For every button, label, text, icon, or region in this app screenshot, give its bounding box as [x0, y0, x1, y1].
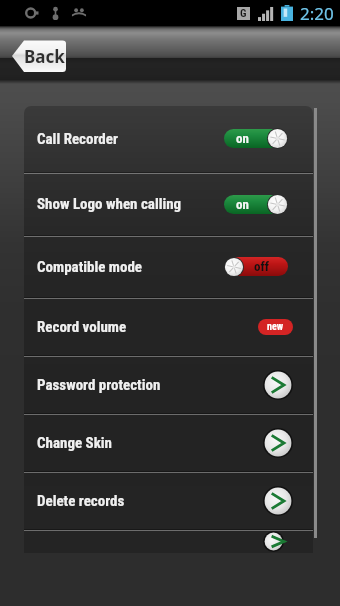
button[interactable]: Back [12, 40, 66, 72]
button[interactable]: Compatible mode [24, 237, 313, 297]
staticText: 2:20 [300, 2, 334, 25]
button[interactable]: Open [24, 531, 313, 553]
button[interactable]: Show Logo when calling [24, 174, 313, 235]
staticText: Back [24, 45, 65, 68]
staticText: G [240, 7, 247, 20]
button[interactable]: Call Recorder [24, 106, 313, 172]
button[interactable]: Switch on [224, 128, 288, 149]
button[interactable]: Switch off [224, 256, 288, 277]
staticText: Call Recorder [37, 130, 229, 148]
staticText: Change Skin [37, 434, 263, 452]
button[interactable]: Delete records [24, 473, 313, 529]
staticText: on [236, 197, 249, 212]
button[interactable]: Open [263, 370, 293, 400]
staticText: new [267, 321, 284, 333]
button[interactable]: Open [263, 486, 293, 516]
staticText: on [236, 131, 249, 146]
staticText: Record volume [37, 318, 258, 336]
staticText: Delete records [37, 492, 263, 510]
staticText: Password protection [37, 376, 263, 394]
button[interactable]: new [258, 319, 293, 335]
button[interactable]: Open [263, 428, 293, 458]
staticText: Show Logo when calling [37, 195, 229, 213]
staticText: off [254, 259, 269, 274]
button[interactable]: Switch on [224, 194, 288, 215]
button[interactable]: Open [263, 531, 293, 552]
button[interactable]: Record volume [24, 299, 313, 355]
staticText: Compatible mode [37, 258, 229, 276]
button[interactable]: Password protection [24, 357, 313, 413]
button[interactable]: Change Skin [24, 415, 313, 471]
